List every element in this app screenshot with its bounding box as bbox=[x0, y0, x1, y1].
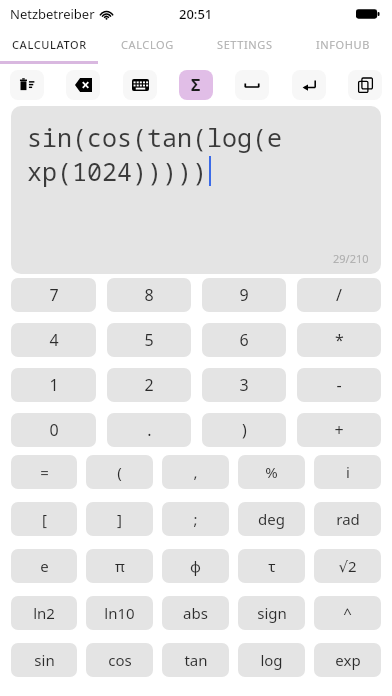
button[interactable]: Enter bbox=[292, 70, 326, 100]
button[interactable]: ^ bbox=[314, 596, 381, 630]
button[interactable]: Space bbox=[235, 70, 269, 100]
button[interactable]: 0 bbox=[11, 413, 96, 447]
button[interactable]: 5 bbox=[107, 323, 191, 357]
button[interactable]: e bbox=[11, 549, 77, 583]
staticText: deg bbox=[258, 509, 285, 529]
button[interactable]: - bbox=[297, 368, 381, 402]
staticText: 9 bbox=[239, 284, 249, 306]
staticText: cos bbox=[108, 650, 132, 670]
staticText: τ bbox=[268, 556, 276, 576]
staticText: 4 bbox=[49, 329, 59, 351]
staticText: CALCULATOR bbox=[12, 37, 87, 52]
staticText: 6 bbox=[239, 329, 249, 351]
button[interactable]: CALCLOG bbox=[98, 28, 196, 61]
button[interactable]: ) bbox=[202, 413, 286, 447]
button[interactable]: sin(cos(tan(log(e bbox=[11, 106, 381, 274]
button[interactable]: cos bbox=[86, 643, 153, 677]
staticText: 7 bbox=[49, 284, 59, 306]
staticText: 20:51 bbox=[179, 5, 213, 23]
button[interactable]: ln2 bbox=[11, 596, 77, 630]
button[interactable]: . bbox=[107, 413, 191, 447]
staticText: [ bbox=[42, 509, 47, 529]
button[interactable]: 3 bbox=[202, 368, 286, 402]
staticText: % bbox=[265, 462, 278, 482]
button[interactable]: 2 bbox=[107, 368, 191, 402]
staticText: / bbox=[336, 284, 342, 306]
button[interactable]: ln10 bbox=[86, 596, 153, 630]
button[interactable]: [ bbox=[11, 502, 77, 536]
staticText: 1 bbox=[49, 374, 59, 396]
staticText: i bbox=[346, 462, 350, 482]
staticText: √2 bbox=[338, 556, 357, 576]
button[interactable]: rad bbox=[314, 502, 381, 536]
staticText: xp(1024))))) bbox=[27, 154, 208, 188]
button[interactable]: Copy bbox=[348, 70, 382, 100]
button[interactable]: φ bbox=[162, 549, 229, 583]
staticText: ln2 bbox=[33, 603, 55, 623]
staticText: ( bbox=[117, 462, 122, 482]
staticText: 3 bbox=[239, 374, 249, 396]
button[interactable]: 4 bbox=[11, 323, 96, 357]
button[interactable]: exp bbox=[314, 643, 381, 677]
button[interactable]: ( bbox=[86, 455, 153, 489]
button[interactable]: INFOHUB bbox=[294, 28, 392, 61]
button[interactable]: 1 bbox=[11, 368, 96, 402]
staticText: sign bbox=[257, 603, 287, 623]
staticText: 29/210 bbox=[333, 251, 369, 266]
button[interactable]: 9 bbox=[202, 278, 286, 312]
staticText: ^ bbox=[343, 603, 352, 623]
staticText: 2 bbox=[144, 374, 154, 396]
button[interactable]: log bbox=[238, 643, 305, 677]
staticText: rad bbox=[336, 509, 360, 529]
staticText: sin bbox=[34, 650, 55, 670]
staticText: . bbox=[147, 419, 152, 441]
button[interactable]: SETTINGS bbox=[196, 28, 294, 61]
button[interactable]: Clear all bbox=[10, 70, 44, 100]
staticText: CALCLOG bbox=[121, 37, 174, 52]
staticText: e bbox=[40, 556, 49, 576]
button[interactable]: * bbox=[297, 323, 381, 357]
staticText: π bbox=[115, 556, 125, 576]
button[interactable]: + bbox=[297, 413, 381, 447]
button[interactable]: CALCULATOR bbox=[0, 28, 98, 61]
staticText: - bbox=[336, 374, 342, 396]
button[interactable]: , bbox=[162, 455, 229, 489]
button[interactable]: Backspace bbox=[66, 70, 100, 100]
button[interactable]: √2 bbox=[314, 549, 381, 583]
staticText: SETTINGS bbox=[217, 37, 273, 52]
staticText: = bbox=[40, 462, 49, 482]
staticText: INFOHUB bbox=[316, 37, 370, 52]
button[interactable]: = bbox=[11, 455, 77, 489]
button[interactable]: sin bbox=[11, 643, 77, 677]
button[interactable]: deg bbox=[238, 502, 305, 536]
staticText: ) bbox=[242, 419, 247, 441]
staticText: sin(cos(tan(log(e bbox=[27, 120, 283, 154]
button[interactable]: / bbox=[297, 278, 381, 312]
staticText: + bbox=[334, 419, 344, 441]
button[interactable]: 8 bbox=[107, 278, 191, 312]
staticText: Σ bbox=[191, 74, 201, 96]
staticText: ] bbox=[117, 509, 122, 529]
button[interactable]: Sum bbox=[179, 70, 213, 100]
button[interactable]: Keyboard bbox=[123, 70, 157, 100]
button[interactable]: sign bbox=[238, 596, 305, 630]
staticText: , bbox=[193, 462, 198, 482]
button[interactable]: i bbox=[314, 455, 381, 489]
staticText: 5 bbox=[144, 329, 154, 351]
button[interactable]: τ bbox=[238, 549, 305, 583]
button[interactable]: π bbox=[86, 549, 153, 583]
button[interactable]: 6 bbox=[202, 323, 286, 357]
staticText: exp bbox=[335, 650, 361, 670]
staticText: ln10 bbox=[104, 603, 135, 623]
staticText: tan bbox=[184, 650, 208, 670]
button[interactable]: tan bbox=[162, 643, 229, 677]
button[interactable]: 7 bbox=[11, 278, 96, 312]
button[interactable]: ; bbox=[162, 502, 229, 536]
button[interactable]: abs bbox=[162, 596, 229, 630]
staticText: log bbox=[260, 650, 283, 670]
button[interactable]: ] bbox=[86, 502, 153, 536]
button[interactable]: % bbox=[238, 455, 305, 489]
staticText: abs bbox=[183, 603, 208, 623]
staticText: 0 bbox=[49, 419, 59, 441]
staticText: Netzbetreiber bbox=[10, 5, 95, 23]
